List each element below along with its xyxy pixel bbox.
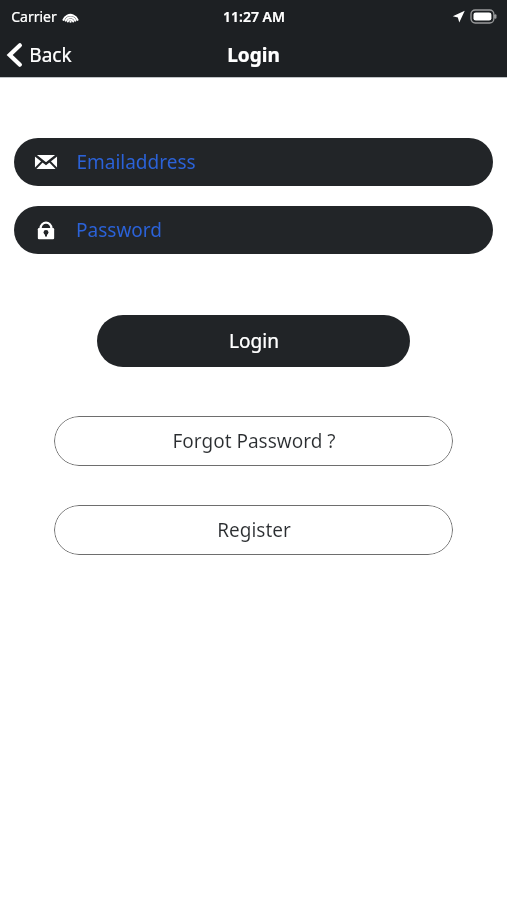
button[interactable]: Login [97, 315, 410, 367]
staticText: Emailaddress [76, 149, 196, 175]
staticText: Login [229, 328, 279, 354]
staticText: Register [217, 517, 291, 543]
button[interactable]: Forgot Password ? [54, 416, 453, 466]
button[interactable]: Register [54, 505, 453, 555]
button[interactable]: Email [14, 138, 493, 186]
staticText: Login [227, 42, 280, 68]
staticText: Carrier [11, 7, 57, 26]
button[interactable]: Back [0, 32, 84, 78]
staticText: Back [29, 42, 72, 68]
button[interactable]: Password [14, 206, 493, 254]
staticText: Password [76, 217, 162, 243]
staticText: 11:27 AM [223, 7, 285, 26]
staticText: Forgot Password ? [172, 428, 336, 454]
